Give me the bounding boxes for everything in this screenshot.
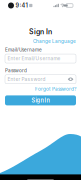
staticText: Sign In (31, 97, 49, 104)
staticText: Enter Password (8, 76, 46, 82)
staticText: Email/Username (5, 47, 42, 53)
button[interactable]: Forgot Password? (35, 86, 76, 92)
staticText: Change Language (33, 38, 76, 44)
staticText: Sign In (29, 27, 52, 36)
staticText: Enter Email/Username (8, 56, 61, 61)
button[interactable]: Change Language (33, 38, 76, 44)
staticText: Forgot Password? (35, 86, 76, 92)
staticText: Password (5, 68, 27, 73)
staticText: 9:41 (16, 2, 28, 9)
button[interactable]: Sign In (5, 95, 76, 105)
